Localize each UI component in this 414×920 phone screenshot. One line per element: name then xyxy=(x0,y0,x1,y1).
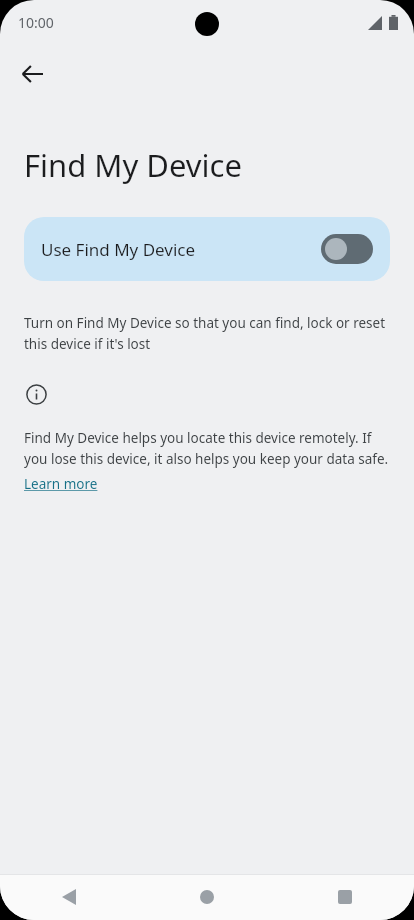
staticText: Find My Device xyxy=(24,144,242,186)
button[interactable]: Learn more xyxy=(24,475,98,493)
staticText: Turn on Find My Device so that you can f… xyxy=(24,314,390,353)
staticText: 10:00 xyxy=(18,13,54,32)
button[interactable]: Home xyxy=(138,874,276,920)
staticText: Find My Device helps you locate this dev… xyxy=(24,429,390,468)
button[interactable]: Use Find My Device xyxy=(24,217,390,281)
button[interactable]: Back xyxy=(8,50,56,98)
button[interactable]: Back xyxy=(0,874,138,920)
button[interactable]: Recent apps xyxy=(276,874,414,920)
staticText: Use Find My Device xyxy=(41,238,321,261)
staticText: Learn more xyxy=(24,475,98,493)
